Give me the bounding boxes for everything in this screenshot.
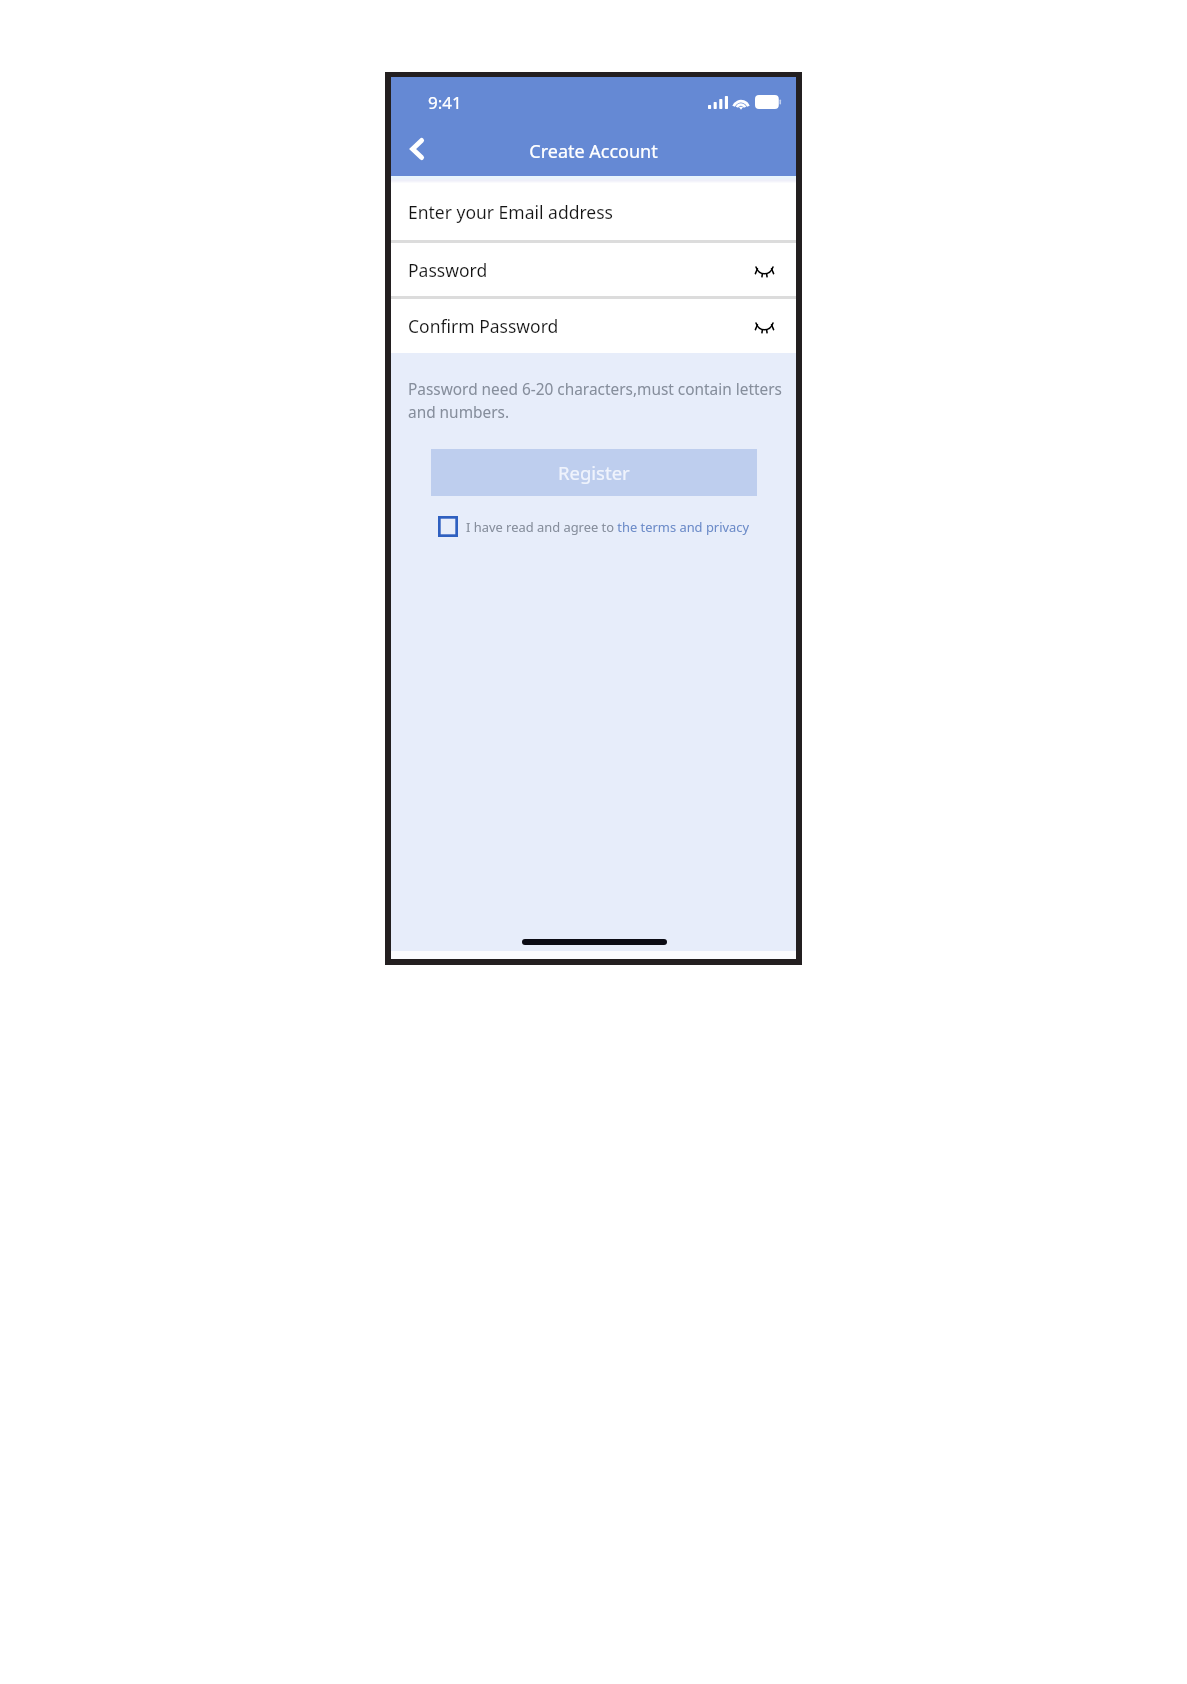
button[interactable]: Password xyxy=(391,243,796,296)
staticText: Create Account xyxy=(391,139,796,164)
button[interactable]: Register xyxy=(431,449,757,496)
staticText: 9:41 xyxy=(428,91,462,114)
staticText: I have read and agree to the terms and p… xyxy=(466,518,749,536)
staticText: Password need 6-20 characters,must conta… xyxy=(408,379,782,423)
button[interactable]: I have read and agree to the terms and p… xyxy=(438,516,749,537)
button[interactable]: Enter your Email address xyxy=(391,183,796,240)
button[interactable]: Show password xyxy=(746,252,782,288)
button[interactable]: Back xyxy=(398,130,436,168)
staticText: Register xyxy=(558,460,630,485)
button[interactable]: Show password xyxy=(746,308,782,344)
button[interactable]: Confirm Password xyxy=(391,299,796,353)
staticText: Password xyxy=(408,258,488,282)
staticText: Confirm Password xyxy=(408,314,559,338)
staticText: Enter your Email address xyxy=(408,200,613,224)
